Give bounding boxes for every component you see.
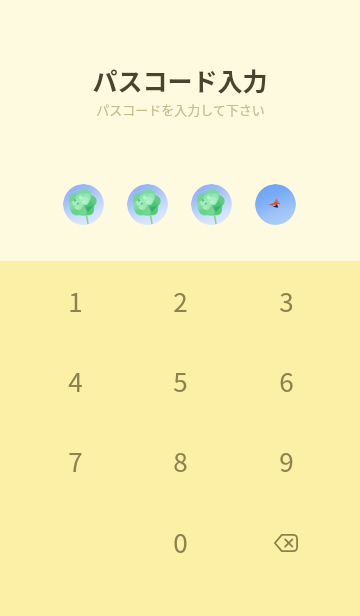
button[interactable]: 5 <box>138 351 222 411</box>
button[interactable]: 9 <box>244 431 328 491</box>
button[interactable]: 2 <box>138 271 222 331</box>
staticText: 7 <box>68 442 83 480</box>
staticText: 0 <box>173 523 188 561</box>
button[interactable]: 3 <box>244 271 328 331</box>
staticText: 6 <box>279 362 294 400</box>
staticText: 8 <box>173 442 188 480</box>
staticText: パスコードを入力して下さい <box>96 100 265 119</box>
button[interactable]: 1 <box>33 271 117 331</box>
staticText: 2 <box>173 282 188 320</box>
staticText: 4 <box>68 362 83 400</box>
staticText: 5 <box>173 362 188 400</box>
staticText: 1 <box>68 282 83 320</box>
other: Delete <box>274 534 298 552</box>
button[interactable]: 7 <box>33 431 117 491</box>
button[interactable]: 0 <box>138 512 222 572</box>
button[interactable]: 4 <box>33 351 117 411</box>
button[interactable]: Delete <box>244 513 328 573</box>
staticText: 9 <box>279 442 294 480</box>
staticText: 3 <box>279 282 294 320</box>
button[interactable]: 6 <box>244 351 328 411</box>
button[interactable]: 8 <box>138 431 222 491</box>
staticText: パスコード入力 <box>92 62 268 98</box>
